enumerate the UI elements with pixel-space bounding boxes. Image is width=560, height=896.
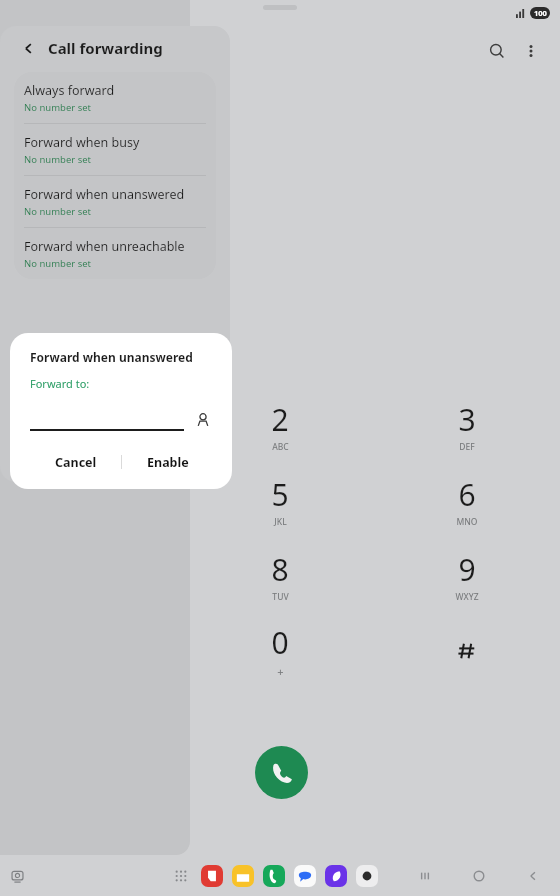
button[interactable]: App [263,865,285,887]
button[interactable] [373,613,560,688]
staticText: Forward to: [30,376,90,391]
staticText: + [277,664,284,679]
staticText: No number set [24,153,91,166]
staticText: No number set [24,205,91,218]
staticText: 100 [534,8,547,18]
button[interactable]: App [356,865,378,887]
staticText: No number set [24,257,91,270]
button[interactable]: Choose contact [192,409,214,431]
staticText: TUV [272,591,289,603]
staticText: ABC [272,441,289,453]
staticText: Forward when unanswered [24,186,185,203]
button[interactable]: 4 [0,463,186,538]
staticText: No number set [24,101,91,114]
staticText: 9 [458,549,476,590]
button[interactable]: 2 [186,388,373,463]
staticText: 1 [84,401,102,442]
button[interactable]: Cancel [30,445,121,479]
staticText: Enable [147,454,189,471]
button[interactable]: Back [16,36,40,60]
staticText: Forward when unreachable [24,238,185,255]
button[interactable]: 1 [0,388,186,463]
staticText: 2 [271,399,289,440]
button[interactable]: Enable [122,445,214,479]
staticText: 4 [84,474,102,515]
button[interactable]: More options [514,34,548,68]
button[interactable]: 6 [373,463,560,538]
button[interactable]: 0 [186,613,373,688]
button[interactable]: Back [520,863,546,889]
button[interactable]: App [201,865,223,887]
button[interactable]: App [294,865,316,887]
staticText: WXYZ [455,591,479,603]
button[interactable]: Forward when unanswered [14,176,216,227]
button[interactable]: Home [466,863,492,889]
staticText: Call forwarding [48,38,163,58]
staticText: 3 [458,399,476,440]
staticText: DEF [459,441,475,453]
button[interactable]: Forward when unreachable [14,228,216,279]
button[interactable]: 5 [186,463,373,538]
button[interactable]: 9 [373,538,560,613]
button[interactable]: Always forward [14,72,216,123]
staticText: Cancel [55,454,97,471]
button[interactable]: 8 [186,538,373,613]
button[interactable]: Recents [412,863,438,889]
button[interactable]: All apps [170,865,192,887]
button[interactable]: Search [480,34,514,68]
staticText: 6 [458,474,476,515]
staticText: Always forward [24,82,115,99]
staticText: MNO [456,516,478,528]
staticText: Forward when busy [24,134,140,151]
button[interactable]: Forward when busy [14,124,216,175]
button[interactable]: Recent apps [4,863,30,889]
button[interactable]: 3 [373,388,560,463]
staticText: 8 [271,549,289,590]
button[interactable]: App [325,865,347,887]
staticText: 0 [271,622,289,663]
staticText: JKL [274,516,287,528]
button[interactable]: Call [255,746,308,799]
staticText: 5 [271,474,289,515]
button[interactable]: App [232,865,254,887]
button[interactable] [30,429,192,431]
staticText: Forward when unanswered [30,349,193,365]
